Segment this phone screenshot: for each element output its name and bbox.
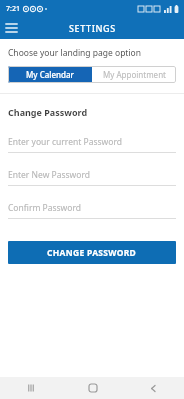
staticText: Choose your landing page option [8,47,142,59]
button[interactable]: My Appointment [92,66,176,83]
button[interactable]: Recent apps [0,377,62,399]
staticText: My Calendar [26,69,74,80]
button[interactable]: My Calendar [8,66,92,83]
staticText: Confirm Password [8,202,81,214]
staticText: My Appointment [103,69,166,80]
button[interactable]: Confirm Password [8,202,176,219]
staticText: CHANGE PASSWORD [47,247,137,259]
button[interactable]: Back [123,377,184,399]
button[interactable]: Enter New Password [8,169,176,186]
button[interactable]: Open navigation menu [0,17,22,39]
staticText: SETTINGS [69,22,116,34]
button[interactable]: CHANGE PASSWORD [8,241,176,264]
staticText: 7:21 [6,4,20,14]
button[interactable]: Home [62,377,123,399]
button[interactable]: Enter your current Password [8,136,176,153]
staticText: Change Password [8,106,88,118]
staticText: Enter your current Password [8,136,122,148]
staticText: Enter New Password [8,169,90,181]
